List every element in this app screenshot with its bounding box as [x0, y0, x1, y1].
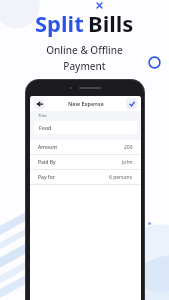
- button[interactable]: Save expense: [126, 98, 137, 109]
- button[interactable]: Amount: [30, 140, 141, 154]
- staticText: Payment: [63, 59, 106, 73]
- staticText: Online & Offline: [46, 43, 123, 57]
- button[interactable]: Paid By: [30, 155, 141, 169]
- staticText: Title:: [38, 113, 48, 119]
- staticText: New Expense: [68, 100, 104, 107]
- staticText: John: [122, 159, 133, 166]
- staticText: 6 persons: [109, 174, 133, 181]
- button[interactable]: Pay for: [30, 170, 141, 184]
- staticText: Amount: [38, 144, 58, 151]
- staticText: Paid By: [38, 159, 56, 166]
- button[interactable]: Food: [34, 121, 137, 134]
- button[interactable]: Back: [34, 98, 45, 109]
- staticText: Food: [39, 124, 52, 131]
- staticText: Split: [35, 8, 84, 38]
- staticText: Pay for: [38, 174, 55, 181]
- staticText: 200: [124, 144, 133, 151]
- staticText: Bills: [88, 8, 134, 38]
